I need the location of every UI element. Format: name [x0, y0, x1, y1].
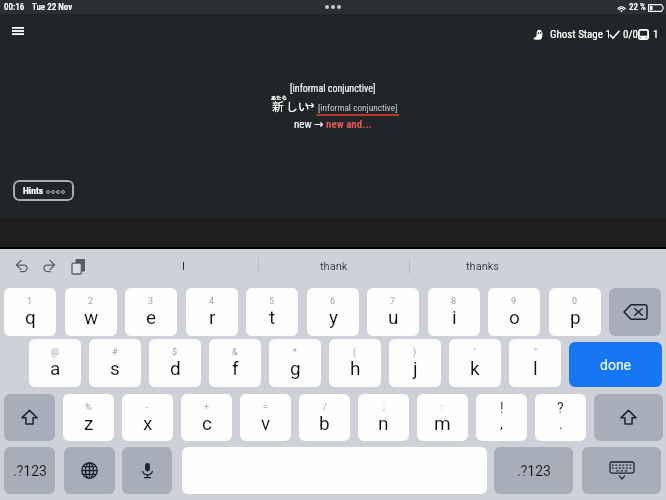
- staticText: u: [388, 306, 399, 328]
- staticText: v: [261, 412, 271, 434]
- staticText: f: [232, 357, 239, 379]
- staticText: 5: [269, 296, 275, 307]
- button[interactable]: ": [509, 339, 561, 387]
- button[interactable]: #: [89, 339, 141, 387]
- button[interactable]: $: [149, 339, 201, 387]
- button[interactable]: done: [569, 342, 662, 387]
- staticText: Hints: [23, 185, 44, 196]
- staticText: b: [319, 412, 330, 434]
- staticText: 8: [451, 296, 457, 307]
- button[interactable]: %: [63, 394, 114, 441]
- button[interactable]: 1: [638, 28, 659, 41]
- button[interactable]: /: [299, 394, 350, 441]
- button[interactable]: Switch language: [64, 447, 115, 494]
- button[interactable]: ;: [358, 394, 409, 441]
- staticText: p: [570, 306, 581, 328]
- staticText: done: [600, 357, 632, 373]
- button[interactable]: 3: [125, 288, 177, 336]
- button[interactable]: Clipboard: [66, 254, 90, 278]
- staticText: thanks: [466, 260, 499, 273]
- staticText: 1: [653, 28, 659, 41]
- button[interactable]: Voice input: [122, 447, 172, 494]
- staticText: .: [559, 416, 563, 432]
- button[interactable]: *: [269, 339, 321, 387]
- button[interactable]: @: [29, 339, 81, 387]
- button[interactable]: Shift: [4, 394, 55, 441]
- button[interactable]: .?123: [494, 447, 573, 494]
- staticText: ?: [557, 400, 564, 416]
- button[interactable]: 5: [246, 288, 298, 336]
- button[interactable]: ': [449, 339, 501, 387]
- staticText: @: [51, 347, 60, 358]
- button[interactable]: -: [122, 394, 173, 441]
- button[interactable]: Hide keyboard: [582, 447, 661, 494]
- button[interactable]: 7: [367, 288, 419, 336]
- staticText: a: [50, 357, 61, 379]
- button[interactable]: Ghost Stage 1: [533, 28, 611, 41]
- staticText: q: [25, 306, 36, 328]
- staticText: 0/0: [623, 28, 638, 41]
- button[interactable]: 2: [65, 288, 117, 336]
- staticText: 4: [209, 296, 215, 307]
- staticText: 新: [272, 98, 284, 115]
- button[interactable]: :: [417, 394, 468, 441]
- button[interactable]: &: [209, 339, 261, 387]
- button[interactable]: 0/0: [609, 28, 638, 41]
- button[interactable]: 9: [488, 288, 540, 336]
- staticText: z: [84, 412, 94, 434]
- staticText: l: [533, 357, 538, 379]
- staticText: !: [500, 400, 504, 416]
- staticText: k: [470, 357, 480, 379]
- button[interactable]: Shift: [594, 394, 663, 441]
- staticText: 2: [88, 296, 94, 307]
- staticText: t: [269, 306, 276, 328]
- button[interactable]: Undo: [10, 254, 34, 278]
- staticText: i: [452, 306, 457, 328]
- staticText: j: [413, 357, 418, 379]
- button[interactable]: 8: [428, 288, 480, 336]
- staticText: g: [290, 357, 301, 379]
- staticText: Tue 22 Nov: [32, 2, 73, 13]
- button[interactable]: thank: [259, 249, 409, 283]
- staticText: 3: [148, 296, 154, 307]
- staticText: =: [263, 402, 268, 413]
- staticText: 1: [27, 296, 33, 307]
- staticText: (: [353, 347, 357, 358]
- staticText: m: [434, 412, 451, 434]
- button[interactable]: !: [476, 394, 527, 441]
- staticText: ): [413, 347, 417, 358]
- staticText: x: [143, 412, 153, 434]
- button[interactable]: I: [108, 249, 258, 283]
- staticText: +: [204, 402, 210, 413]
- staticText: #: [112, 347, 118, 358]
- button[interactable]: =: [240, 394, 291, 441]
- staticText: Ghost Stage 1: [550, 28, 611, 41]
- button[interactable]: .?123: [4, 447, 55, 494]
- button[interactable]: ?: [535, 394, 586, 441]
- staticText: [informal conjunctive]: [318, 102, 398, 113]
- button[interactable]: 4: [186, 288, 238, 336]
- button[interactable]: 6: [307, 288, 359, 336]
- button[interactable]: thanks: [410, 249, 555, 283]
- staticText: $: [172, 347, 178, 358]
- staticText: 0: [572, 296, 578, 307]
- staticText: 00:16: [4, 2, 25, 13]
- button[interactable]: +: [181, 394, 232, 441]
- staticText: new: [294, 118, 312, 131]
- button[interactable]: Redo: [37, 254, 61, 278]
- button[interactable]: (: [329, 339, 381, 387]
- staticText: thank: [320, 260, 348, 273]
- button[interactable]: Backspace: [609, 288, 661, 336]
- button[interactable]: ): [389, 339, 441, 387]
- button[interactable]: 0: [549, 288, 601, 336]
- staticText: ;: [383, 402, 385, 413]
- staticText: しい: [286, 98, 309, 115]
- button[interactable]: 1: [4, 288, 56, 336]
- staticText: I: [182, 260, 185, 273]
- staticText: w: [84, 306, 99, 328]
- button[interactable]: Hints: [13, 180, 74, 201]
- staticText: *: [293, 347, 297, 358]
- button[interactable]: Menu: [6, 19, 29, 42]
- staticText: 6: [330, 296, 336, 307]
